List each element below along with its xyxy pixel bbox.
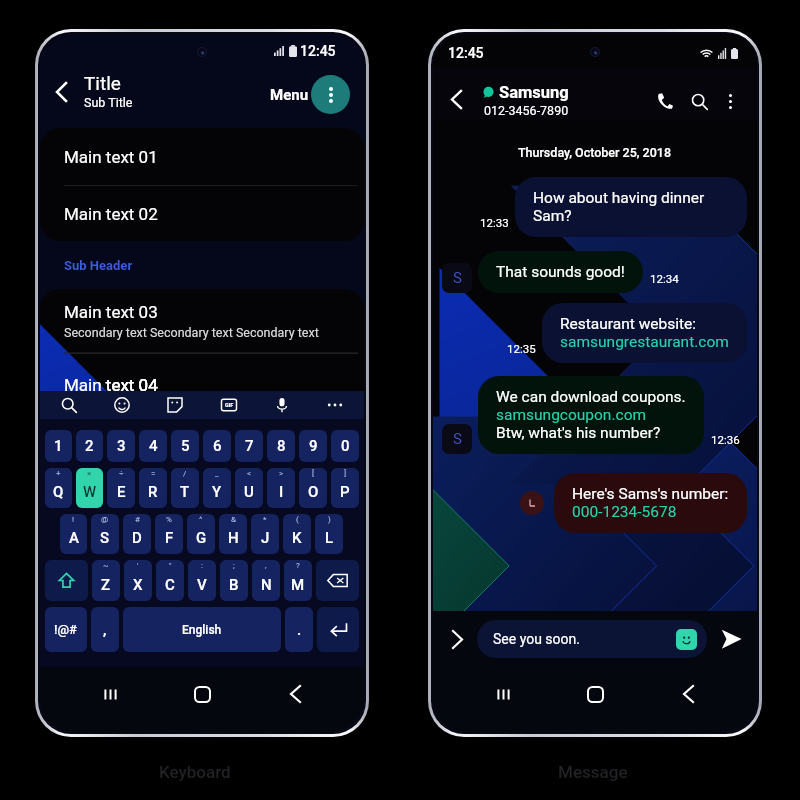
button[interactable]: Back — [43, 74, 79, 110]
button[interactable]: !@# — [45, 607, 87, 652]
button[interactable]: Call — [650, 86, 680, 116]
button[interactable]: T — [171, 468, 199, 508]
button[interactable]: 8 — [267, 430, 295, 462]
button[interactable]: Home — [179, 671, 225, 717]
staticText: 12:45 — [448, 45, 484, 61]
button[interactable]: S — [91, 514, 119, 554]
staticText: 000-1234-5678 — [572, 503, 677, 521]
button[interactable]: Backspace — [316, 560, 359, 601]
staticText: samsungcoupon.com — [496, 406, 647, 424]
button[interactable]: U — [235, 468, 263, 508]
staticText: O — [308, 483, 319, 501]
staticText: Main text 03 — [64, 302, 158, 322]
button[interactable]: 0 — [331, 430, 359, 462]
staticText: @ — [101, 515, 109, 524]
button[interactable]: N — [252, 560, 280, 601]
button[interactable]: Back — [272, 671, 318, 717]
staticText: % — [166, 515, 172, 524]
staticText: / — [183, 469, 187, 478]
button[interactable]: Send — [715, 623, 747, 655]
button[interactable]: 3 — [107, 430, 135, 462]
button[interactable]: Main text 04 — [40, 354, 364, 415]
button[interactable]: Search — [57, 393, 81, 417]
button[interactable]: Menu — [268, 80, 311, 110]
button[interactable]: Main text 01 — [40, 128, 364, 185]
button[interactable]: Shift — [45, 560, 88, 601]
button[interactable]: A — [60, 514, 87, 554]
button[interactable]: . — [285, 607, 313, 652]
button[interactable]: Expand — [443, 625, 471, 653]
staticText: See you soon. — [493, 631, 580, 647]
staticText: H — [228, 529, 239, 547]
button[interactable]: Recents — [87, 671, 133, 717]
button[interactable]: 4 — [139, 430, 167, 462]
button[interactable]: 7 — [235, 430, 263, 462]
staticText: 6 — [213, 437, 222, 455]
button[interactable]: C — [156, 560, 184, 601]
button[interactable]: X — [124, 560, 152, 601]
button[interactable]: S — [442, 263, 472, 293]
button[interactable]: English — [123, 607, 281, 652]
staticText: S — [100, 529, 110, 547]
button[interactable]: , — [91, 607, 119, 652]
staticText: 12:36 — [711, 433, 740, 446]
staticText: 2 — [85, 437, 94, 455]
button[interactable]: 1 — [45, 430, 72, 462]
button[interactable]: E — [107, 468, 135, 508]
button[interactable]: Recents — [480, 671, 526, 717]
staticText: C — [165, 576, 175, 594]
button[interactable]: Voice input — [270, 393, 294, 417]
button[interactable]: J — [251, 514, 279, 554]
button[interactable]: More options — [311, 75, 350, 114]
button[interactable]: K — [283, 514, 311, 554]
button[interactable]: G — [187, 514, 215, 554]
button[interactable]: That sounds good! — [478, 251, 643, 293]
staticText: Sub Header — [64, 258, 133, 273]
staticText: T — [180, 483, 190, 501]
button[interactable]: 5 — [171, 430, 199, 462]
button[interactable]: More — [323, 393, 347, 417]
button[interactable]: Restaurant website: — [542, 303, 747, 363]
button[interactable]: GIF — [217, 393, 241, 417]
button[interactable]: 2 — [76, 430, 103, 462]
button[interactable]: L — [315, 514, 343, 554]
button[interactable]: Q — [45, 468, 72, 508]
button[interactable]: Back — [665, 671, 711, 717]
button[interactable]: Z — [92, 560, 120, 601]
button[interactable]: W — [76, 468, 103, 508]
button[interactable]: P — [331, 468, 359, 508]
staticText: E — [117, 483, 126, 501]
staticText: GIF — [225, 402, 234, 408]
button[interactable]: More options — [717, 88, 743, 114]
button[interactable]: I — [267, 468, 295, 508]
button[interactable]: Main text 02 — [40, 186, 364, 241]
button[interactable]: How about having dinner with — [515, 177, 747, 237]
button[interactable]: Main text 03 — [40, 289, 364, 353]
button[interactable]: Search — [684, 86, 714, 116]
button[interactable]: Emoji — [110, 393, 134, 417]
button[interactable]: B — [220, 560, 248, 601]
staticText: . — [297, 621, 302, 639]
button[interactable]: Home — [572, 671, 618, 717]
button[interactable]: M — [284, 560, 312, 601]
button[interactable]: S — [442, 424, 472, 454]
button[interactable]: 9 — [299, 430, 327, 462]
button[interactable]: D — [123, 514, 151, 554]
staticText: F — [165, 529, 174, 547]
button[interactable]: Y — [203, 468, 231, 508]
button[interactable]: V — [188, 560, 216, 601]
button[interactable]: H — [219, 514, 247, 554]
button[interactable]: Here's Sams's number: — [554, 473, 747, 533]
staticText: Btw, what's his number? — [496, 424, 661, 442]
button[interactable]: Stickers — [163, 393, 187, 417]
button[interactable]: 6 — [203, 430, 231, 462]
staticText: K — [292, 529, 302, 547]
button[interactable]: Back — [439, 82, 473, 116]
button[interactable]: Enter — [317, 607, 359, 652]
button[interactable]: F — [155, 514, 183, 554]
button[interactable]: We can download coupons. — [478, 376, 704, 454]
staticText: 1 — [54, 437, 63, 455]
button[interactable]: R — [139, 468, 167, 508]
button[interactable]: O — [299, 468, 327, 508]
button[interactable]: See you soon. — [477, 620, 707, 658]
